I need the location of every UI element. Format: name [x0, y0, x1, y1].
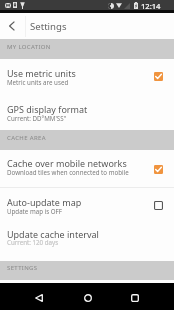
button[interactable]: Home [77, 287, 98, 308]
button[interactable]: Navigate up [1, 15, 22, 36]
button[interactable]: Auto-update map [0, 188, 174, 221]
staticText: 12:14 [141, 1, 161, 11]
staticText: GPS display format [7, 103, 149, 115]
staticText: Use metric units [7, 67, 149, 79]
button[interactable]: Use metric units [0, 59, 174, 97]
staticText: Update map is OFF [7, 207, 149, 215]
button[interactable]: Update cache interval [0, 221, 174, 261]
button[interactable]: Cache over mobile networks [0, 151, 174, 188]
staticText: Download tiles when connected to mobile [7, 168, 149, 176]
button[interactable]: Recent apps [124, 287, 145, 308]
staticText: MY LOCATION [7, 43, 51, 51]
staticText: CACHE AREA [7, 134, 46, 142]
staticText: Cache over mobile networks [7, 157, 149, 169]
staticText: Current: 120 days [7, 238, 149, 246]
staticText: Current: DD°MM'SS" [7, 114, 149, 122]
staticText: SETTINGS [7, 264, 38, 272]
button[interactable]: Back [28, 287, 49, 308]
staticText: Auto-update map [7, 196, 149, 208]
staticText: Settings [30, 20, 67, 33]
staticText: Metric units are used [7, 78, 149, 86]
staticText: Update cache interval [7, 228, 149, 240]
button[interactable]: GPS display format [0, 96, 174, 130]
